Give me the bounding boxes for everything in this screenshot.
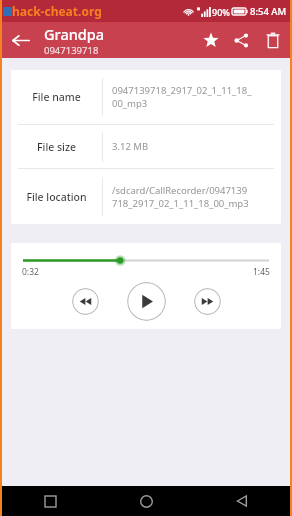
button[interactable]: Rewind (72, 288, 99, 315)
staticText: 1:45 (253, 266, 270, 278)
button[interactable]: Fast forward (194, 288, 221, 315)
button[interactable]: Delete (256, 22, 290, 58)
staticText: File name (32, 90, 81, 104)
staticText: File size (37, 140, 76, 154)
button[interactable]: Share (226, 22, 256, 58)
staticText: 0947139718 (44, 44, 99, 57)
staticText: Grandpa (44, 24, 105, 44)
staticText: /sdcard/CallRecorder/0947139 718_2917_02… (112, 184, 249, 210)
button[interactable]: Recents (35, 486, 65, 516)
staticText: 0947139718_2917_02_1_11_18_ 00_mp3 (112, 84, 252, 110)
staticText: 8:54 AM (250, 5, 287, 18)
staticText: 0:32 (22, 266, 39, 278)
button[interactable]: Back (227, 486, 257, 516)
button[interactable]: Home (131, 486, 161, 516)
button[interactable]: Back (2, 22, 38, 58)
staticText: File location (26, 190, 87, 204)
staticText: 90% (212, 6, 230, 18)
button[interactable]: Play (127, 282, 166, 321)
staticText: hack-cheat.org (12, 3, 102, 19)
staticText: 3.12 MB (112, 140, 149, 153)
button[interactable]: Favorite (196, 22, 226, 58)
